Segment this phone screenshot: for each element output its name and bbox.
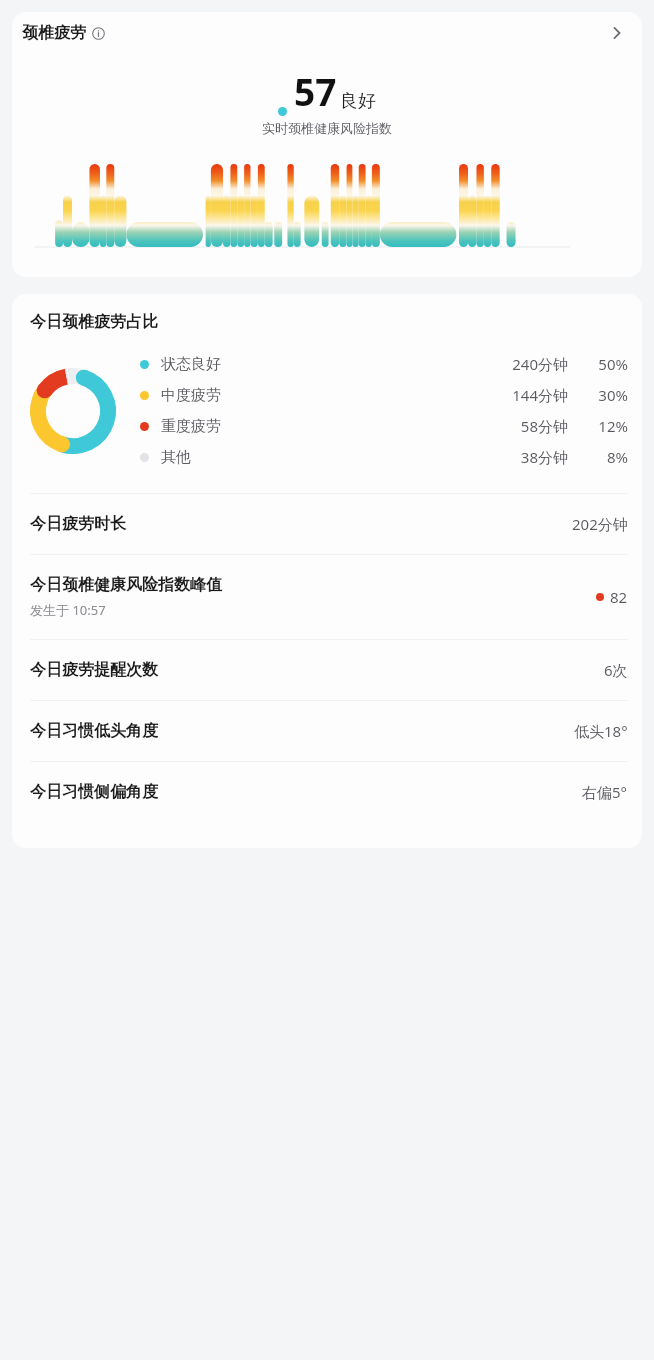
staticText: 今日颈椎疲劳占比 (30, 312, 158, 332)
staticText: 右偏5° (582, 782, 628, 802)
staticText: 57 (294, 66, 337, 116)
staticText: 状态良好 (161, 355, 247, 374)
staticText: 发生于 10:57 (30, 601, 106, 619)
staticText: 重度疲劳 (161, 417, 247, 436)
staticText: 低头18° (574, 721, 628, 741)
staticText: 82 (610, 587, 628, 607)
button[interactable]: More (602, 18, 632, 48)
button[interactable]: 其他 (140, 447, 628, 467)
staticText: 颈椎疲劳 (22, 23, 86, 43)
staticText: 6次 (604, 660, 628, 680)
other: Info (92, 27, 105, 40)
button[interactable]: 颈椎疲劳 (12, 12, 642, 54)
staticText: 202分钟 (572, 514, 628, 534)
staticText: 中度疲劳 (161, 386, 247, 405)
staticText: 30% (586, 385, 628, 405)
staticText: 今日习惯侧偏角度 (30, 782, 158, 802)
staticText: 8% (586, 447, 628, 467)
button[interactable]: 今日颈椎健康风险指数峰值 (12, 555, 642, 639)
button[interactable]: 今日疲劳时长 (12, 494, 642, 554)
button[interactable]: 状态良好 (140, 354, 628, 374)
staticText: 其他 (161, 448, 247, 467)
staticText: 58分钟 (247, 416, 568, 436)
staticText: 240分钟 (247, 354, 568, 374)
button[interactable]: 重度疲劳 (140, 416, 628, 436)
button[interactable]: 今日习惯侧偏角度 (12, 762, 642, 822)
button[interactable]: 今日疲劳提醒次数 (12, 640, 642, 700)
button[interactable]: 今日习惯低头角度 (12, 701, 642, 761)
staticText: 今日疲劳时长 (30, 514, 126, 534)
staticText: 50% (586, 354, 628, 374)
button[interactable]: 中度疲劳 (140, 385, 628, 405)
staticText: 今日习惯低头角度 (30, 721, 158, 741)
staticText: 实时颈椎健康风险指数 (12, 120, 642, 136)
staticText: 12% (586, 416, 628, 436)
staticText: 良好 (340, 90, 376, 113)
staticText: 38分钟 (247, 447, 568, 467)
staticText: 144分钟 (247, 385, 568, 405)
staticText: 今日疲劳提醒次数 (30, 660, 158, 680)
staticText: 今日颈椎健康风险指数峰值 (30, 575, 222, 595)
